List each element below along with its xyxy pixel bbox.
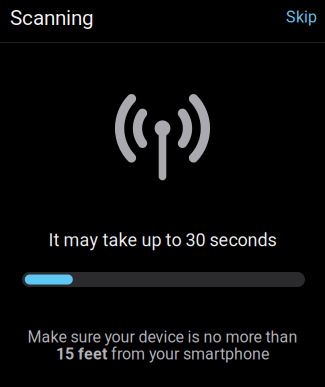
button[interactable]: Scanning (10, 0, 130, 37)
staticText: 15 feet from your smartphone (56, 345, 269, 363)
staticText: It may take up to 30 seconds (48, 229, 276, 251)
staticText: Make sure your device is no more than (27, 328, 297, 346)
staticText: Skip (286, 8, 317, 26)
staticText: Scanning (10, 6, 94, 30)
button[interactable]: Skip (261, 0, 317, 36)
